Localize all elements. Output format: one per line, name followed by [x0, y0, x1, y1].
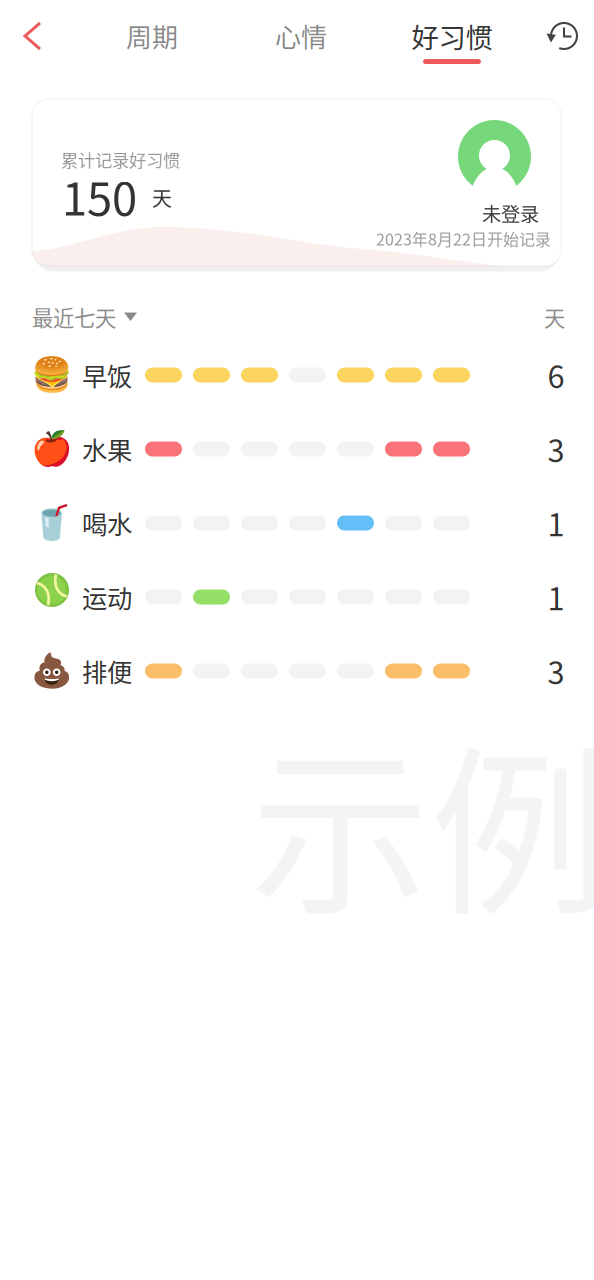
staticText: 🥤 [31, 503, 73, 543]
staticText: 水果 [82, 431, 132, 467]
button[interactable]: 🥤 [0, 486, 594, 560]
staticText: 累计记录好习惯 [61, 147, 180, 172]
button[interactable]: 心情 [241, 0, 361, 72]
staticText: 1 [547, 501, 564, 545]
staticText: 心情 [275, 17, 327, 55]
staticText: 喝水 [82, 505, 132, 541]
staticText: 🍔 [31, 355, 73, 395]
button[interactable]: 💩 [0, 634, 594, 708]
staticText: 天 [544, 302, 565, 332]
staticText: 排便 [82, 653, 132, 689]
staticText: 周期 [126, 17, 178, 55]
staticText: 3 [547, 649, 564, 693]
button[interactable]: 运动 [0, 560, 594, 634]
staticText: 好习惯 [411, 16, 492, 56]
button[interactable]: 🍎 [0, 412, 594, 486]
button[interactable]: History [538, 0, 590, 72]
staticText: 2023年8月22日开始记录 [376, 227, 551, 250]
button[interactable]: 🍔 [0, 338, 594, 412]
staticText: 3 [547, 427, 564, 471]
staticText: 最近七天 [32, 302, 116, 332]
staticText: 1 [547, 575, 564, 619]
staticText: 天 [152, 183, 172, 212]
button[interactable]: 最近七天 [32, 300, 137, 334]
button[interactable]: Back [0, 0, 66, 72]
staticText: 示例 [250, 690, 594, 951]
staticText: 运动 [82, 579, 132, 615]
staticText: 💩 [31, 651, 73, 691]
staticText: 早饭 [82, 357, 132, 393]
staticText: 🍎 [31, 429, 73, 469]
staticText: 6 [547, 353, 564, 397]
staticText: 未登录 [482, 199, 539, 227]
button[interactable]: 好习惯 [392, 0, 512, 72]
staticText: 150 [62, 163, 137, 229]
button[interactable]: 周期 [92, 0, 212, 72]
